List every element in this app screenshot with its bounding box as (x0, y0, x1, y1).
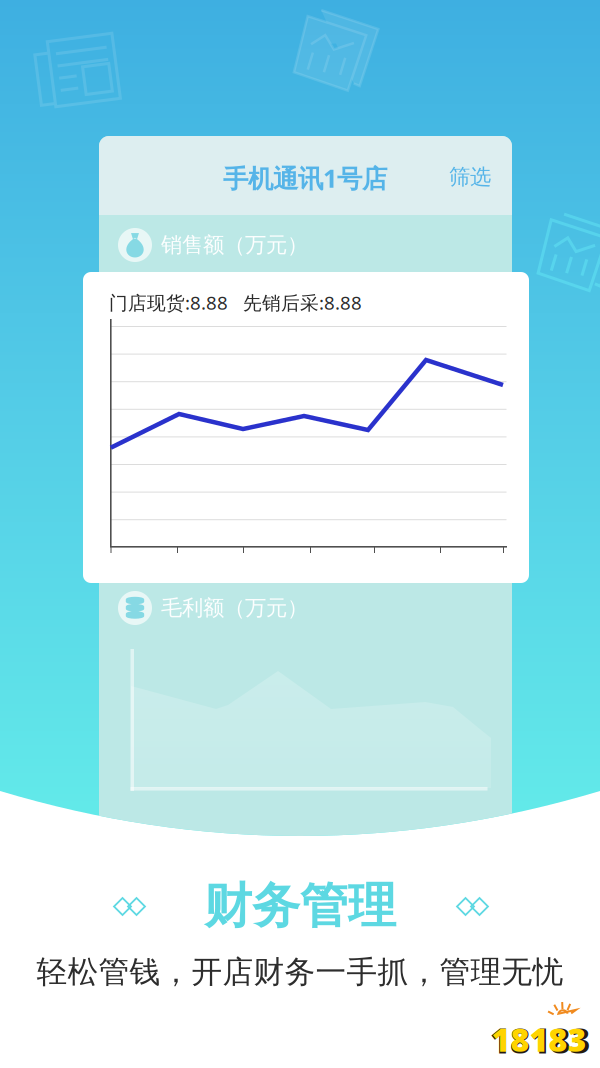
button[interactable]: 手机通讯1号店 (205, 156, 405, 200)
staticText: 毛利额（万元） (161, 595, 308, 621)
staticText: 轻松管钱，开店财务一手抓，管理无忧 (36, 953, 563, 991)
staticText: 门店现货:8.88 先销后采:8.88 (109, 290, 362, 315)
staticText: 财务管理 (204, 876, 396, 935)
button[interactable]: 筛选 (442, 157, 498, 197)
staticText: 手机通讯1号店 (223, 161, 387, 195)
staticText: 18183 (491, 1018, 586, 1060)
staticText: 18183 (490, 1017, 590, 1063)
staticText: 销售额（万元） (161, 232, 308, 258)
staticText: 筛选 (449, 164, 491, 190)
